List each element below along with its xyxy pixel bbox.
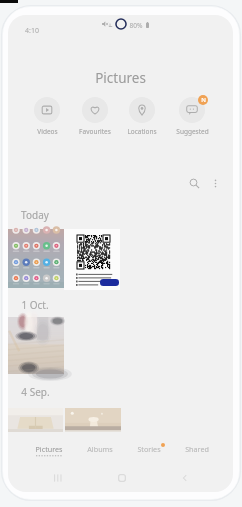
staticText: Suggested	[176, 127, 209, 136]
staticText: 80%	[129, 21, 143, 30]
staticText: N	[201, 96, 206, 104]
staticText: 4 Sep.	[21, 385, 50, 399]
button[interactable]: Search	[183, 172, 205, 194]
button[interactable]	[8, 229, 64, 288]
staticText: Albums	[87, 444, 113, 454]
staticText: Favourites	[79, 127, 111, 136]
staticText: Today	[21, 208, 49, 222]
button[interactable]: Videos	[23, 97, 71, 136]
button[interactable]	[64, 229, 120, 290]
button[interactable]: Locations	[118, 97, 166, 136]
button[interactable]: Favourites	[71, 97, 119, 136]
button[interactable]: N	[168, 97, 216, 136]
staticText: Pictures	[35, 444, 63, 454]
staticText: Locations	[127, 127, 157, 136]
button[interactable]: Pictures	[25, 439, 73, 461]
button[interactable]	[8, 317, 64, 374]
button[interactable]: Shared	[173, 439, 221, 461]
button[interactable]	[8, 408, 63, 432]
button[interactable]	[65, 408, 121, 432]
button[interactable]: Home	[111, 467, 133, 489]
staticText: Pictures	[95, 69, 146, 87]
staticText: Videos	[37, 127, 58, 136]
staticText: Shared	[185, 444, 209, 454]
staticText: 1 Oct.	[21, 298, 49, 312]
button[interactable]: Recents	[47, 467, 69, 489]
staticText: 4:10	[25, 26, 39, 36]
button[interactable]: Albums	[76, 439, 124, 461]
button[interactable]: Stories	[125, 439, 173, 461]
button[interactable]: More options	[204, 172, 226, 194]
staticText: Stories	[137, 444, 161, 454]
